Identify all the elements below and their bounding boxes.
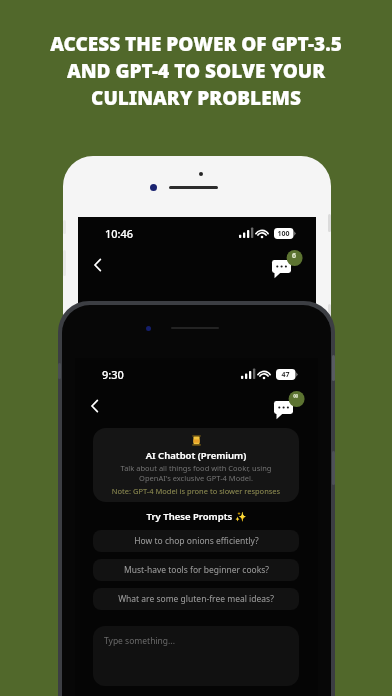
button[interactable]: How to chop onions efficiently? <box>93 530 299 552</box>
button[interactable]: AI Chatbot (Premium) <box>93 428 299 502</box>
button[interactable]: Type something... <box>93 626 299 686</box>
staticText: What are some gluten-free meal ideas? <box>118 593 274 605</box>
button[interactable]: Must-have tools for beginner cooks? <box>93 559 299 581</box>
button[interactable]: Messages <box>272 389 308 425</box>
staticText: Talk about all things food with Cookr, u… <box>107 463 285 483</box>
staticText: ∞ <box>289 392 303 400</box>
button[interactable]: What are some gluten-free meal ideas? <box>93 588 299 610</box>
button[interactable]: Back <box>85 252 111 278</box>
button[interactable]: Messages <box>270 248 306 284</box>
button[interactable]: Back <box>82 393 108 419</box>
staticText: 10:46 <box>105 226 134 241</box>
staticText: Try These Prompts ✨ <box>75 510 318 523</box>
staticText: 47 <box>276 370 295 380</box>
staticText: Note: GPT-4 Model is prone to slower res… <box>93 486 299 496</box>
staticText: How to chop onions efficiently? <box>134 535 259 547</box>
staticText: 9:30 <box>102 367 124 382</box>
staticText: ACCESS THE POWER OF GPT-3.5 AND GPT-4 TO… <box>38 31 354 111</box>
staticText: 6 <box>287 251 301 261</box>
staticText: 100 <box>274 229 293 239</box>
staticText: Type something... <box>104 635 175 647</box>
staticText: Must-have tools for beginner cooks? <box>124 564 269 576</box>
staticText: AI Chatbot (Premium) <box>93 449 299 462</box>
